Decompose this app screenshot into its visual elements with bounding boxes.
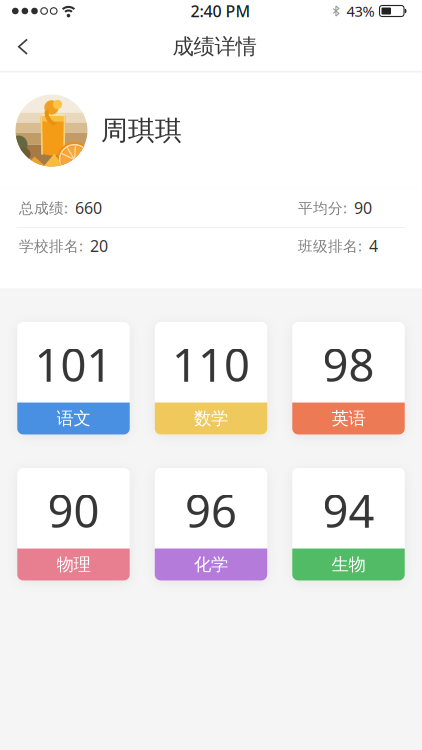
staticText: 20 — [90, 235, 108, 256]
staticText: 周琪琪 — [101, 114, 182, 147]
staticText: 96 — [185, 480, 237, 540]
staticText: 90 — [47, 480, 99, 540]
staticText: 660 — [75, 197, 102, 218]
staticText: 化学 — [194, 554, 228, 575]
staticText: 98 — [322, 334, 374, 394]
staticText: 平均分: — [298, 198, 347, 217]
staticText: 学校排名: — [19, 236, 83, 255]
staticText: 90 — [354, 197, 372, 218]
staticText: 43% — [346, 1, 374, 21]
button[interactable]: Back — [2, 25, 44, 69]
staticText: 语文 — [56, 408, 90, 429]
staticText: 成绩详情 — [172, 34, 256, 60]
staticText: 英语 — [331, 408, 365, 429]
staticText: 4 — [369, 235, 378, 256]
staticText: 生物 — [331, 554, 365, 575]
staticText: 110 — [172, 334, 250, 394]
staticText: 总成绩: — [19, 198, 68, 217]
staticText: 数学 — [194, 408, 228, 429]
staticText: 2:40 PM — [190, 0, 250, 22]
staticText: 101 — [34, 334, 112, 394]
staticText: 94 — [322, 480, 374, 540]
staticText: 班级排名: — [298, 236, 362, 255]
staticText: 物理 — [56, 554, 90, 575]
